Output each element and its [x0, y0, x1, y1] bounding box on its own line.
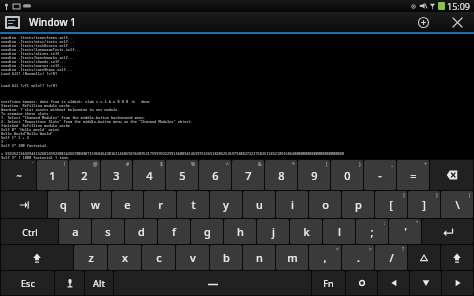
button[interactable]: y	[210, 191, 242, 218]
button[interactable]: Space	[114, 271, 311, 295]
button[interactable]: .	[342, 245, 374, 270]
button[interactable]: e	[112, 191, 143, 218]
staticText: g	[204, 224, 211, 239]
button[interactable]: i	[276, 191, 308, 218]
staticText: %	[191, 161, 196, 168]
staticText: y	[223, 197, 229, 212]
button[interactable]: b	[210, 245, 242, 270]
button[interactable]: f	[158, 219, 190, 244]
button[interactable]: '	[389, 219, 421, 244]
button[interactable]: Home	[346, 271, 377, 295]
staticText: 1	[49, 168, 56, 183]
button[interactable]: 6	[199, 160, 231, 190]
button[interactable]: Backspace	[430, 160, 473, 190]
button[interactable]: Tab	[1, 191, 47, 218]
button[interactable]: 0	[331, 160, 363, 190]
button[interactable]: w	[80, 191, 111, 218]
button[interactable]: Mic	[55, 271, 84, 295]
button[interactable]: m	[276, 245, 308, 270]
button[interactable]: u	[243, 191, 275, 218]
button[interactable]: Alt	[85, 271, 113, 295]
staticText: h	[237, 224, 244, 239]
button[interactable]: v	[176, 245, 209, 270]
button[interactable]: Left	[378, 271, 409, 295]
staticText: Esc	[21, 277, 35, 289]
staticText: n	[256, 250, 263, 265]
button[interactable]: [	[375, 191, 407, 218]
button[interactable]: ,	[309, 245, 341, 270]
button[interactable]: Up	[408, 245, 440, 270]
staticText: 1. Select "Changed Modules" from the mid…	[1, 115, 146, 119]
staticText: Load All? (Normally) [y/N]	[1, 71, 58, 75]
button[interactable]: 5	[166, 160, 198, 190]
button[interactable]: p	[342, 191, 374, 218]
staticText: Load All [yfl only]? [y/N]	[1, 83, 58, 87]
staticText: )	[359, 161, 361, 168]
staticText: ^	[226, 161, 229, 168]
staticText: verifying images: data from ts oldpsk: s…	[1, 99, 150, 103]
button[interactable]: -	[364, 160, 396, 190]
staticText: o	[322, 197, 329, 212]
button[interactable]: n	[243, 245, 275, 270]
button[interactable]: 9	[298, 160, 330, 190]
staticText: v	[190, 250, 196, 265]
button[interactable]: ]	[408, 191, 440, 218]
staticText: Ctrl	[22, 226, 38, 238]
button[interactable]: d	[125, 219, 157, 244]
button[interactable]: Fn	[312, 271, 345, 295]
button[interactable]: l	[323, 219, 355, 244]
staticText: }	[436, 192, 438, 199]
staticText: reading .Itests/testAccess.self...	[1, 43, 75, 47]
button[interactable]: Close window	[440, 12, 474, 32]
button[interactable]: x	[108, 245, 141, 270]
staticText: |	[468, 192, 471, 199]
staticText: Warning: 7 slot assets without belonging…	[1, 107, 120, 111]
button[interactable]: t	[177, 191, 209, 218]
button[interactable]: Right	[442, 271, 473, 295]
button[interactable]: j	[257, 219, 289, 244]
button[interactable]: o	[309, 191, 341, 218]
button[interactable]: h	[224, 219, 256, 244]
staticText: j	[272, 224, 275, 239]
staticText: reading .Itests/shards.self...	[1, 59, 66, 63]
button[interactable]: 8	[265, 160, 297, 190]
button[interactable]: a	[59, 219, 91, 244]
staticText: s	[105, 224, 111, 239]
button[interactable]: 3	[101, 160, 132, 190]
staticText: b	[223, 250, 230, 265]
staticText: \	[455, 197, 460, 212]
button[interactable]: 4	[133, 160, 165, 190]
button[interactable]: /	[375, 245, 407, 270]
button[interactable]: Enter	[422, 219, 473, 244]
button[interactable]: =	[397, 160, 429, 190]
staticText: 2	[81, 168, 88, 183]
staticText: ,	[323, 250, 327, 265]
button[interactable]: k	[290, 219, 322, 244]
button[interactable]: r	[144, 191, 176, 218]
button[interactable]: s	[92, 219, 124, 244]
button[interactable]: \	[441, 191, 473, 218]
staticText: reading .Itests/parser.self...	[1, 63, 66, 67]
button[interactable]: New window	[406, 12, 440, 32]
staticText: !	[64, 161, 66, 168]
button[interactable]: z	[74, 245, 107, 270]
button[interactable]: ;	[356, 219, 388, 244]
button[interactable]: g	[191, 219, 223, 244]
button[interactable]: Esc	[1, 271, 54, 295]
button[interactable]: Shift	[441, 245, 473, 270]
button[interactable]: Down	[410, 271, 441, 295]
staticText: Self 0* 'Hello world' print	[1, 127, 60, 131]
staticText: x	[122, 250, 128, 265]
staticText: t	[191, 197, 196, 212]
staticText: 4	[146, 168, 153, 183]
button[interactable]: c	[142, 245, 175, 270]
button[interactable]: 2	[69, 160, 100, 190]
staticText: 8	[278, 168, 285, 183]
button[interactable]: 7	[232, 160, 264, 190]
staticText: `	[32, 161, 34, 168]
button[interactable]: q	[48, 191, 79, 218]
button[interactable]: ~	[1, 160, 36, 190]
button[interactable]: Ctrl	[1, 219, 58, 244]
button[interactable]: Shift	[1, 245, 73, 270]
button[interactable]: 1	[37, 160, 68, 190]
